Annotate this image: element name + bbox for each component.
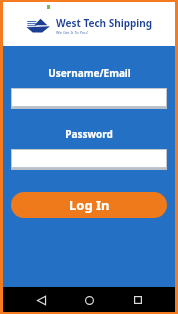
staticText: West Tech Shipping [56,16,153,30]
staticText: Password [65,127,113,141]
button[interactable] [11,88,167,107]
button[interactable]: Back [30,289,52,311]
staticText: Log In [69,196,110,214]
staticText: Username/Email [48,66,131,80]
button[interactable] [11,149,167,168]
staticText: We Get It To You! [56,30,88,35]
button[interactable]: Home [78,289,100,311]
button[interactable]: Recent apps [127,289,149,311]
button[interactable]: Log In [11,192,167,218]
other: West Tech Shipping logo [26,18,52,34]
